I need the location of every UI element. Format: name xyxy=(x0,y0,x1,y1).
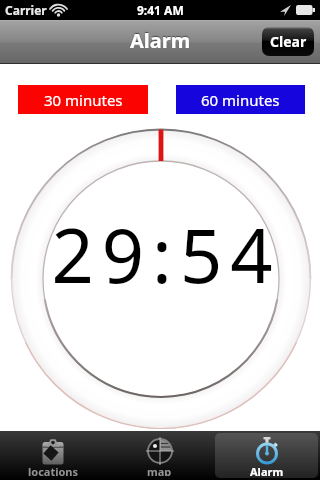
staticText: Clear xyxy=(270,32,307,51)
button[interactable]: map xyxy=(108,433,211,478)
staticText: map xyxy=(147,464,172,476)
staticText: locations xyxy=(28,464,79,476)
staticText: Carrier xyxy=(5,2,47,18)
staticText: 60 minutes xyxy=(201,90,280,110)
staticText: Alarm xyxy=(130,27,191,54)
button[interactable]: 30 minutes xyxy=(18,85,148,114)
button[interactable]: locations xyxy=(2,433,104,478)
staticText: Alarm xyxy=(250,464,284,476)
staticText: 30 minutes xyxy=(44,90,123,110)
button[interactable]: Clear xyxy=(262,27,314,56)
staticText: 29:54 xyxy=(6,204,320,305)
button[interactable]: Alarm xyxy=(215,433,318,478)
staticText: 9:41 AM xyxy=(137,2,184,18)
button[interactable]: 60 minutes xyxy=(176,85,305,114)
